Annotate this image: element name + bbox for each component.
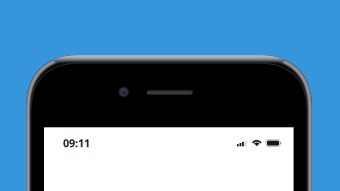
staticText: 09:11 <box>63 136 90 150</box>
